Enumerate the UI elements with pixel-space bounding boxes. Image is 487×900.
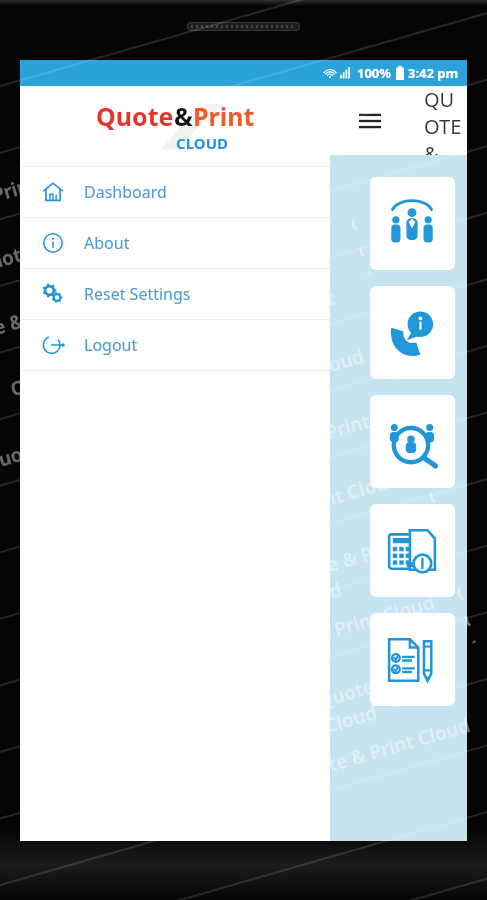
staticText: QUOTE & PRINT: [424, 86, 467, 155]
staticText: 100%: [357, 64, 392, 82]
staticText: Quote & Print Cloud: [111, 97, 296, 173]
staticText: Quote & Print Cloud: [208, 273, 384, 370]
staticText: Quote & Print Cloud: [348, 212, 370, 275]
button[interactable]: Add New: [370, 613, 455, 706]
button[interactable]: About: [20, 218, 330, 268]
button[interactable]: Jobs: [370, 395, 455, 488]
staticText: Quote & Print Cloud: [314, 643, 487, 739]
staticText: Quote & Print Cloud: [0, 277, 131, 353]
staticText: Quote & Print Cloud: [147, 220, 332, 296]
button[interactable]: Open navigation menu: [350, 101, 390, 141]
staticText: Quote & Print Cloud: [252, 589, 437, 665]
button[interactable]: Contacts: [370, 177, 455, 270]
staticText: 3:42 pm: [408, 64, 459, 82]
button[interactable]: Quotes: [370, 504, 455, 597]
staticText: Quote & Print Cloud: [279, 519, 455, 616]
staticText: Dashboard: [84, 181, 167, 203]
staticText: Quote & Print Cloud: [383, 335, 405, 398]
staticText: About: [84, 232, 130, 254]
staticText: Quote: [96, 99, 174, 133]
staticText: Quote & Print Cloud: [0, 203, 157, 279]
staticText: Quote & Print Cloud: [182, 343, 367, 419]
staticText: Quote & Print Cloud: [87, 770, 272, 846]
staticText: Quote & Print Cloud: [217, 466, 402, 542]
staticText: &: [174, 99, 193, 133]
staticText: Reset Settings: [84, 283, 191, 305]
staticText: Quote & Print Cloud: [173, 150, 349, 247]
staticText: Quote & Print Cloud: [8, 326, 193, 402]
staticText: CLOUD: [176, 133, 228, 153]
staticText: Quote & Print Cloud: [244, 396, 420, 493]
button[interactable]: Customers: [370, 286, 455, 379]
staticText: Quote & Print Cloud: [418, 458, 440, 521]
button[interactable]: Dashboard: [20, 167, 330, 217]
staticText: Logout: [84, 334, 138, 356]
staticText: Quote & Print Cloud: [0, 401, 166, 477]
staticText: Quote & Print Cloud: [16, 524, 201, 600]
staticText: Quote & Print Cloud: [0, 154, 95, 230]
staticText: Quote & Print Cloud: [288, 712, 473, 788]
staticText: Quote & Print Cloud: [453, 581, 476, 644]
button[interactable]: Reset Settings: [20, 269, 330, 319]
staticText: Print: [193, 99, 255, 133]
button[interactable]: Logout: [20, 320, 330, 370]
